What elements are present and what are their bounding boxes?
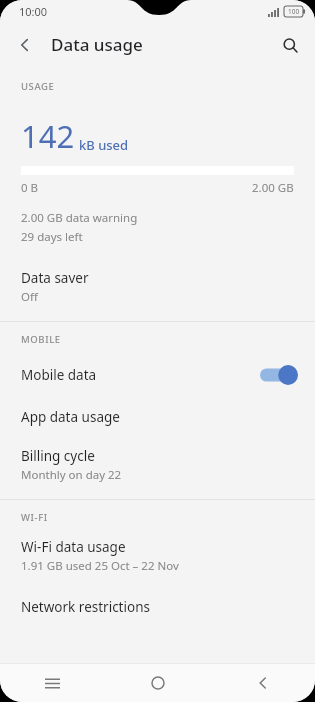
- button[interactable]: Data saver: [0, 267, 315, 307]
- staticText: Data usage: [51, 33, 143, 56]
- staticText: 100: [288, 7, 300, 16]
- staticText: Data saver: [21, 269, 89, 287]
- staticText: USAGE: [21, 80, 55, 93]
- staticText: Mobile data: [21, 366, 260, 384]
- button[interactable]: Home: [105, 664, 210, 702]
- button[interactable]: Back: [210, 664, 315, 702]
- button[interactable]: Mobile data toggle: [260, 364, 298, 386]
- staticText: Wi-Fi data usage: [21, 538, 126, 556]
- button[interactable]: App data usage: [0, 406, 315, 428]
- staticText: MOBILE: [21, 333, 61, 346]
- button[interactable]: Search: [273, 28, 307, 62]
- button[interactable]: Billing cycle: [0, 445, 315, 485]
- button[interactable]: Mobile data: [0, 358, 315, 392]
- staticText: Off: [21, 289, 38, 305]
- staticText: App data usage: [21, 408, 120, 426]
- button[interactable]: Navigate up: [8, 28, 42, 62]
- staticText: 0 B: [21, 180, 39, 196]
- staticText: 2.00 GB data warning: [21, 210, 138, 226]
- button[interactable]: Recent apps: [0, 664, 105, 702]
- staticText: 142: [21, 115, 75, 157]
- button[interactable]: Wi-Fi data usage: [0, 536, 315, 576]
- staticText: 29 days left: [21, 229, 83, 245]
- staticText: 1.91 GB used 25 Oct – 22 Nov: [21, 558, 179, 574]
- staticText: kB used: [79, 136, 129, 154]
- staticText: 2.00 GB: [252, 180, 294, 196]
- staticText: Billing cycle: [21, 447, 95, 465]
- staticText: 10:00: [19, 4, 48, 19]
- staticText: WI-FI: [21, 511, 48, 524]
- staticText: Network restrictions: [21, 598, 150, 616]
- staticText: Monthly on day 22: [21, 467, 122, 483]
- button[interactable]: Network restrictions: [0, 596, 315, 618]
